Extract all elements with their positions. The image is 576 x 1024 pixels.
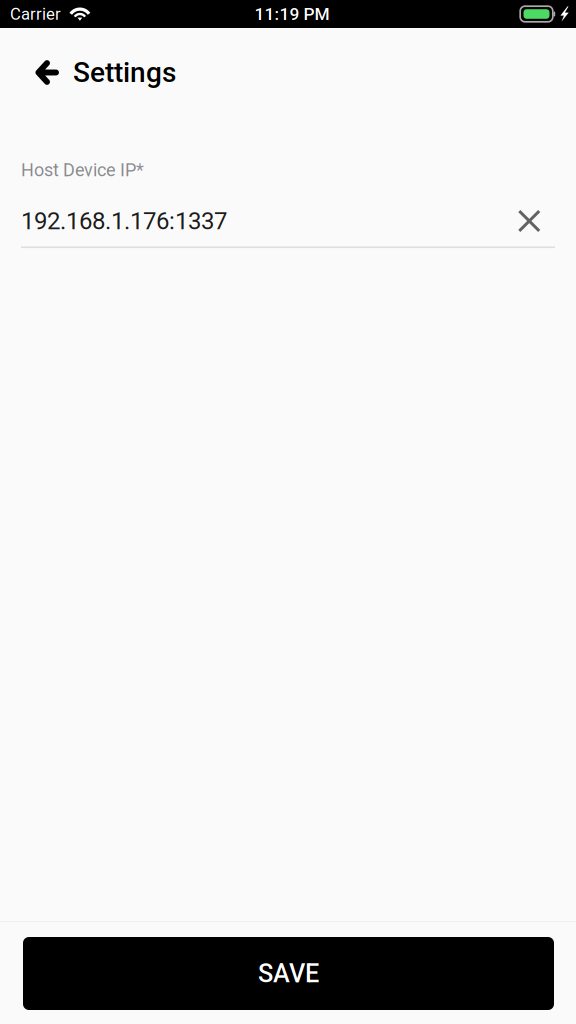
button[interactable]: Back (0, 50, 73, 94)
staticText: Settings (73, 56, 176, 89)
button[interactable]: SAVE (23, 937, 554, 1010)
staticText: 11:19 PM (254, 4, 329, 24)
staticText: Carrier (10, 4, 61, 24)
button[interactable]: Clear text (503, 207, 555, 235)
staticText: Host Device IP* (21, 159, 144, 181)
staticText: SAVE (258, 959, 319, 988)
staticText: 192.168.1.176:1337 (21, 207, 227, 235)
